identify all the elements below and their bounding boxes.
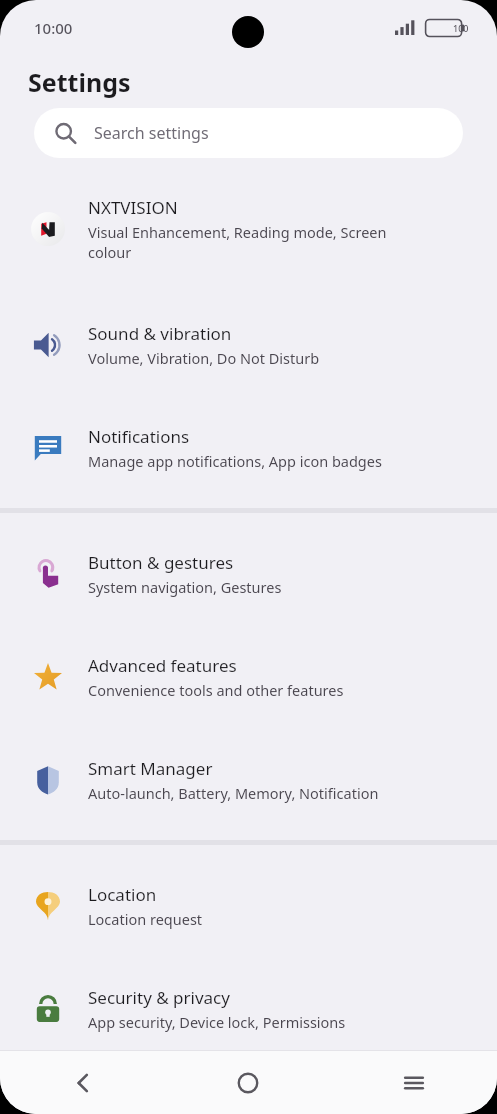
button[interactable]: Sound & vibration bbox=[0, 293, 497, 396]
staticText: Location bbox=[88, 883, 157, 906]
staticText: Location request bbox=[88, 909, 203, 929]
staticText: Notifications bbox=[88, 425, 190, 448]
staticText: Auto-launch, Battery, Memory, Notificati… bbox=[88, 783, 379, 803]
button[interactable]: Location bbox=[0, 854, 497, 957]
staticText: NXTVISION bbox=[88, 196, 178, 219]
button[interactable]: Notifications bbox=[0, 396, 497, 499]
staticText: Smart Manager bbox=[88, 757, 213, 780]
staticText: Visual Enhancement, Reading mode, Screen… bbox=[88, 222, 387, 263]
staticText: 10:00 bbox=[34, 18, 73, 38]
button[interactable]: NXTVISION bbox=[0, 165, 497, 293]
staticText: Advanced features bbox=[88, 654, 237, 677]
staticText: Settings bbox=[28, 65, 131, 99]
button[interactable]: Security & privacy bbox=[0, 957, 497, 1060]
staticText: Button & gestures bbox=[88, 551, 234, 574]
staticText: Sound & vibration bbox=[88, 322, 232, 345]
button[interactable]: Back bbox=[0, 1051, 165, 1114]
staticText: Volume, Vibration, Do Not Disturb bbox=[88, 348, 320, 368]
staticText: Manage app notifications, App icon badge… bbox=[88, 451, 382, 471]
button[interactable]: Button & gestures bbox=[0, 522, 497, 625]
button[interactable]: Smart Manager bbox=[0, 728, 497, 831]
button[interactable]: Home bbox=[165, 1051, 331, 1114]
staticText: App security, Device lock, Permissions bbox=[88, 1012, 346, 1032]
staticText: System navigation, Gestures bbox=[88, 577, 282, 597]
staticText: Security & privacy bbox=[88, 986, 230, 1009]
staticText: 100 bbox=[453, 22, 469, 34]
button[interactable]: Search settings bbox=[34, 108, 463, 158]
staticText: Convenience tools and other features bbox=[88, 680, 344, 700]
button[interactable]: Recent apps bbox=[331, 1051, 497, 1114]
button[interactable]: Advanced features bbox=[0, 625, 497, 728]
staticText: Search settings bbox=[94, 122, 209, 144]
